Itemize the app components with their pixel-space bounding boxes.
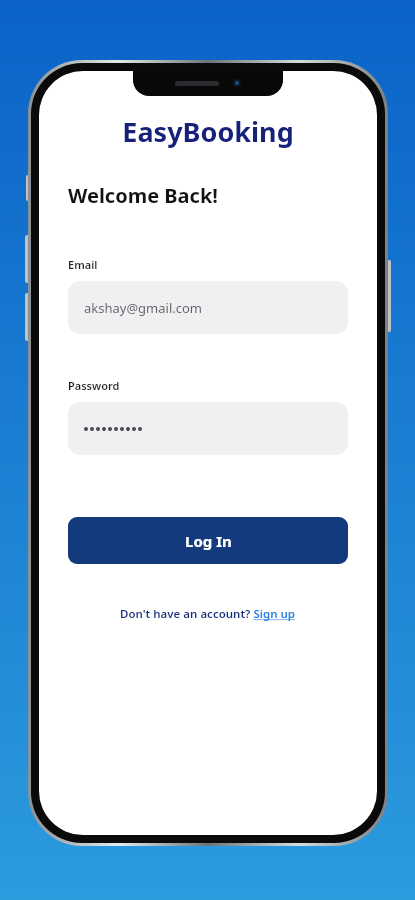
button[interactable]: Log In <box>68 517 348 564</box>
staticText: Log In <box>185 531 232 551</box>
staticText: Welcome Back! <box>68 182 218 209</box>
staticText: Don't have an account? Sign up <box>120 606 296 622</box>
staticText: Password <box>68 378 120 393</box>
button[interactable]: akshay@gmail.com <box>68 281 348 334</box>
button[interactable]: Don't have an account? Sign up <box>120 606 296 622</box>
button[interactable] <box>68 402 348 455</box>
staticText: Email <box>68 257 98 272</box>
staticText: akshay@gmail.com <box>84 299 203 317</box>
staticText: EasyBooking <box>39 113 377 150</box>
